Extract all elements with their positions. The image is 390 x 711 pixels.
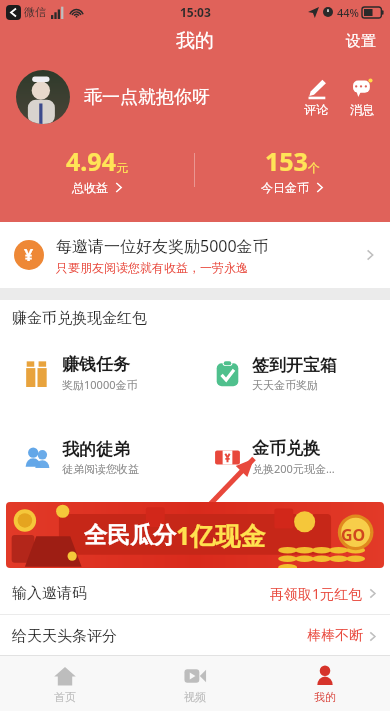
staticText: 今日金币 bbox=[261, 180, 309, 195]
staticText: 我的徒弟 bbox=[62, 439, 130, 460]
button[interactable]: 我的徒弟 bbox=[10, 420, 190, 494]
button[interactable]: 设置 bbox=[346, 32, 376, 51]
staticText: 个 bbox=[308, 160, 320, 175]
button[interactable]: 赚钱任务 bbox=[10, 336, 190, 410]
staticText: 我的 bbox=[176, 29, 214, 53]
staticText: 消息 bbox=[350, 102, 374, 117]
button[interactable]: 我的 bbox=[260, 656, 390, 711]
staticText: 1亿现金 bbox=[176, 518, 266, 552]
staticText: 兑换200元现金… bbox=[252, 461, 335, 476]
button[interactable]: 金币兑换 bbox=[200, 420, 380, 494]
button[interactable]: 首页 bbox=[0, 656, 130, 711]
button[interactable]: 视频 bbox=[130, 656, 260, 711]
staticText: 15:03 bbox=[180, 4, 211, 20]
button[interactable]: Messages bbox=[348, 76, 376, 119]
staticText: 全民瓜分 bbox=[84, 521, 176, 550]
button[interactable]: Profile photo bbox=[16, 70, 70, 124]
staticText: ¥ bbox=[24, 244, 34, 266]
staticText: 首页 bbox=[54, 690, 76, 704]
staticText: 赚钱任务 bbox=[62, 354, 130, 375]
staticText: 再领取1元红包 bbox=[270, 584, 363, 603]
staticText: 金币兑换 bbox=[252, 438, 320, 459]
button[interactable]: 输入邀请码 bbox=[0, 572, 390, 614]
staticText: 元 bbox=[116, 160, 128, 175]
button[interactable]: Comments bbox=[302, 76, 330, 119]
staticText: 视频 bbox=[184, 690, 206, 704]
staticText: 天天金币奖励 bbox=[252, 378, 318, 392]
staticText: 乖一点就抱你呀 bbox=[84, 86, 210, 109]
staticText: 赚金币兑换现金红包 bbox=[12, 309, 147, 328]
staticText: 44% bbox=[337, 5, 359, 20]
button[interactable]: 签到开宝箱 bbox=[200, 336, 380, 410]
button[interactable]: 全民瓜分1亿现金 bbox=[6, 502, 384, 568]
staticText: 棒棒不断 bbox=[307, 627, 363, 645]
button[interactable]: ¥ bbox=[0, 222, 390, 288]
staticText: 每邀请一位好友奖励5000金币 bbox=[56, 235, 269, 257]
staticText: 153 bbox=[265, 144, 308, 178]
staticText: 签到开宝箱 bbox=[252, 355, 337, 376]
staticText: 微信 bbox=[24, 5, 46, 19]
staticText: 徒弟阅读您收益 bbox=[62, 462, 139, 476]
staticText: GO bbox=[341, 524, 366, 546]
button[interactable]: 4.94 bbox=[0, 144, 194, 195]
button[interactable]: 153 bbox=[195, 144, 390, 195]
staticText: 4.94 bbox=[66, 144, 116, 178]
staticText: 输入邀请码 bbox=[12, 584, 87, 603]
staticText: 奖励10000金币 bbox=[62, 377, 138, 392]
staticText: 只要朋友阅读您就有收益，一劳永逸 bbox=[56, 260, 248, 275]
button[interactable]: 给天天头条评分 bbox=[0, 615, 390, 657]
staticText: 总收益 bbox=[72, 180, 108, 195]
staticText: 我的 bbox=[314, 690, 336, 704]
staticText: 评论 bbox=[304, 102, 328, 117]
staticText: 给天天头条评分 bbox=[12, 627, 117, 646]
